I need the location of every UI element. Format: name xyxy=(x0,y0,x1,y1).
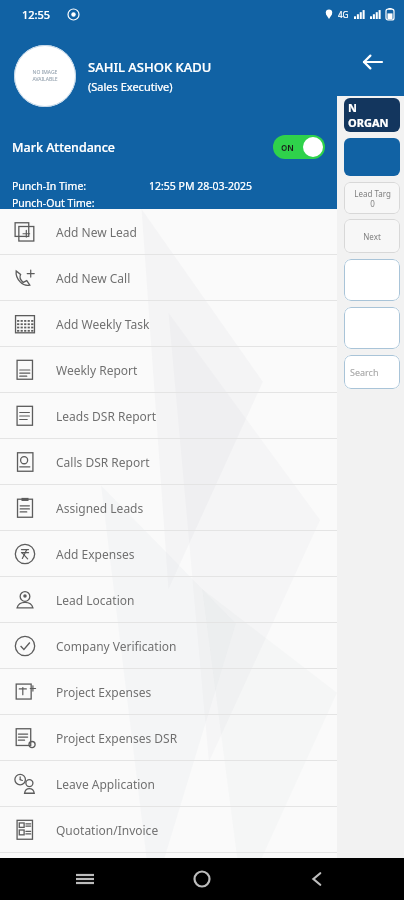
button[interactable]: N ORGAN xyxy=(344,98,400,132)
button[interactable]: Weekly Report xyxy=(0,347,337,392)
staticText: Add Expenses xyxy=(56,546,135,562)
button[interactable]: Back xyxy=(308,870,326,888)
staticText: Add New Lead xyxy=(56,224,137,240)
staticText: SAHIL ASHOK KADU xyxy=(88,58,212,76)
button[interactable]: Lead Targ 0 xyxy=(344,182,400,214)
staticText: ON xyxy=(281,142,294,153)
button[interactable]: Attendance toggle on xyxy=(273,135,325,159)
button[interactable]: Next xyxy=(344,219,400,253)
button[interactable]: Back xyxy=(362,52,382,72)
staticText: Project Expenses DSR xyxy=(56,730,178,746)
button[interactable] xyxy=(344,259,400,301)
button[interactable]: Add New Lead xyxy=(0,209,337,254)
button[interactable]: Project Expenses DSR xyxy=(0,715,337,760)
staticText: Add Weekly Task xyxy=(56,316,150,332)
staticText: Punch-In Time: xyxy=(12,179,87,193)
button[interactable] xyxy=(344,138,400,176)
staticText: Payment Followup xyxy=(56,868,160,884)
button[interactable]: Home xyxy=(193,870,211,888)
staticText: Calls DSR Report xyxy=(56,454,150,470)
staticText: Mark Attendance xyxy=(12,139,115,156)
button[interactable]: Recent apps xyxy=(75,869,95,889)
staticText: Lead Targ 0 xyxy=(354,188,391,209)
staticText: Punch-Out Time: xyxy=(12,196,95,209)
staticText: 12:55 xyxy=(22,7,51,22)
staticText: Assigned Leads xyxy=(56,500,144,516)
button[interactable]: Leads DSR Report xyxy=(0,393,337,438)
staticText: Project Expenses xyxy=(56,684,152,700)
button[interactable]: Search xyxy=(344,355,400,389)
button[interactable]: Quotation/Invoice xyxy=(0,807,337,852)
button[interactable]: Assigned Leads xyxy=(0,485,337,530)
staticText: Search xyxy=(350,366,379,378)
staticText: Next xyxy=(363,231,381,242)
button[interactable]: Add Expenses xyxy=(0,531,337,576)
staticText: (Sales Executive) xyxy=(88,79,173,94)
button[interactable]: Payment Followup xyxy=(0,853,337,898)
staticText: Leave Application xyxy=(56,776,155,792)
staticText: Weekly Report xyxy=(56,362,138,378)
staticText: NO IMAGE AVAILABLE xyxy=(32,69,58,83)
button[interactable]: Add New Call xyxy=(0,255,337,300)
button[interactable]: Calls DSR Report xyxy=(0,439,337,484)
staticText: Leads DSR Report xyxy=(56,408,157,424)
button[interactable]: Leave Application xyxy=(0,761,337,806)
button[interactable] xyxy=(344,307,400,349)
staticText: Quotation/Invoice xyxy=(56,822,159,838)
button[interactable]: Company Verification xyxy=(0,623,337,668)
staticText: Lead Location xyxy=(56,592,135,608)
staticText: 12:55 PM 28-03-2025 xyxy=(149,179,252,193)
button[interactable]: Add Weekly Task xyxy=(0,301,337,346)
staticText: Company Verification xyxy=(56,638,177,654)
button[interactable]: Mark Attendance xyxy=(0,123,337,171)
button[interactable]: Lead Location xyxy=(0,577,337,622)
staticText: N ORGAN xyxy=(348,100,400,130)
staticText: Add New Call xyxy=(56,270,131,286)
button[interactable]: Project Expenses xyxy=(0,669,337,714)
staticText: 4G xyxy=(338,9,349,20)
